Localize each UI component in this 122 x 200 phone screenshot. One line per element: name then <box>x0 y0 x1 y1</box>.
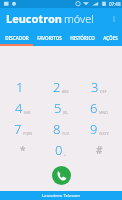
staticText: MNO <box>99 110 108 115</box>
button[interactable]: 1 <box>4 76 42 97</box>
staticText: PQRS <box>23 131 33 136</box>
button[interactable]: DISCADOR <box>0 29 33 46</box>
button[interactable]: 3 <box>80 76 118 97</box>
staticText: JKL <box>63 110 69 115</box>
button[interactable]: HISTÓRICO <box>66 29 99 46</box>
staticText: DISCADOR <box>5 35 29 41</box>
button[interactable]: 9 <box>80 118 118 139</box>
button[interactable]: FAVORITOS <box>33 29 66 46</box>
button[interactable]: 5 <box>42 97 80 118</box>
staticText: 7 <box>14 120 22 138</box>
staticText: + <box>64 152 67 157</box>
button[interactable]: 2 <box>42 76 80 97</box>
staticText: 9 <box>90 120 98 138</box>
staticText: Leucotron Telecom <box>42 193 81 199</box>
button[interactable]: 7 <box>4 118 42 139</box>
button[interactable]: More options <box>106 11 122 27</box>
staticText: 3 <box>91 78 99 96</box>
staticText: AÇÕES <box>103 35 118 41</box>
button[interactable]: Call <box>52 166 71 185</box>
staticText: ABC <box>62 89 69 94</box>
staticText: 5 <box>54 99 62 117</box>
button[interactable]: * <box>4 139 42 160</box>
button[interactable]: AÇÕES <box>99 29 122 46</box>
staticText: 0 <box>55 141 63 159</box>
button[interactable]: 0 <box>42 139 80 160</box>
staticText: # <box>96 143 103 157</box>
staticText: 1 <box>16 78 24 96</box>
staticText: DEF <box>100 89 107 94</box>
staticText: GHI <box>24 110 31 115</box>
staticText: WXYZ <box>99 131 109 136</box>
button[interactable]: 8 <box>42 118 80 139</box>
staticText: 07:48 <box>109 1 121 7</box>
button[interactable]: 4 <box>4 97 42 118</box>
staticText: HISTÓRICO <box>70 35 95 41</box>
button[interactable]: 6 <box>80 97 118 118</box>
staticText: * <box>20 143 26 157</box>
staticText: FAVORITOS <box>37 35 62 41</box>
staticText: 6 <box>90 99 98 117</box>
staticText: 4 <box>15 99 23 117</box>
staticText: Leucotron <box>6 11 62 26</box>
staticText: TUV <box>62 131 69 136</box>
button[interactable]: # <box>80 139 118 160</box>
staticText: móvel <box>64 11 94 26</box>
staticText: 8 <box>53 120 61 138</box>
staticText: 2 <box>53 78 61 96</box>
